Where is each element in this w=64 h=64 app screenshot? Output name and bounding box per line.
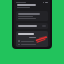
other: Sale stamp [36,36,47,43]
button[interactable] [17,4,47,8]
button[interactable] [16,11,48,21]
button[interactable]: Sale stamp [16,31,48,47]
button[interactable] [16,23,48,29]
